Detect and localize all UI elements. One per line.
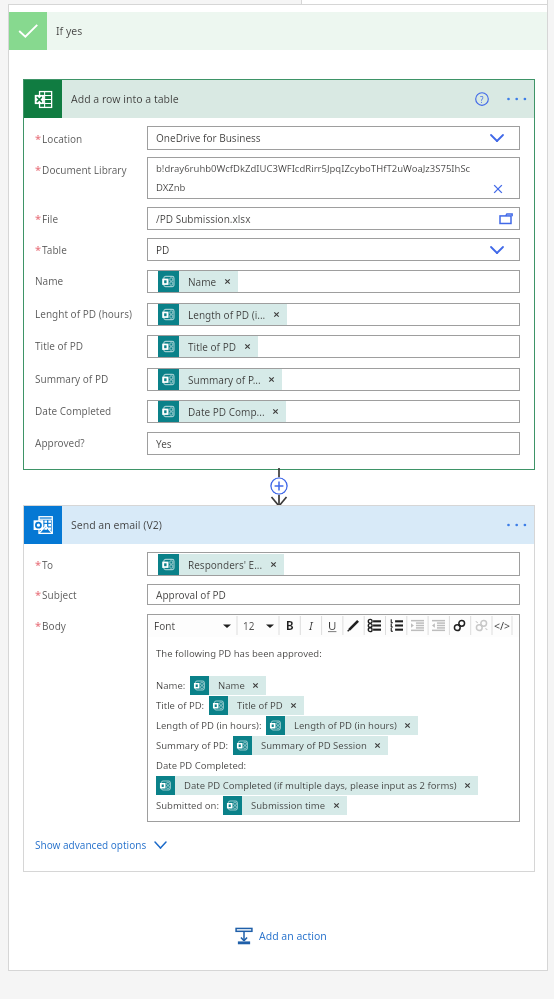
button[interactable]: Length of PD (i... [158, 304, 287, 325]
staticText: If yes [56, 24, 83, 38]
staticText: Length of PD (in hours): [156, 719, 262, 732]
button[interactable]: Code view [492, 614, 513, 637]
button[interactable]: Bold [279, 614, 300, 637]
button[interactable]: Title of PD [147, 335, 520, 358]
staticText: </> [494, 619, 511, 633]
staticText: Send an email (V2) [71, 518, 162, 532]
staticText: Add an action [259, 929, 327, 943]
staticText: * Body [35, 618, 66, 633]
button[interactable]: Decrease indent [428, 614, 449, 637]
button[interactable]: Summary of PD Session [233, 736, 388, 755]
staticText: Lenght of PD (hours) [35, 307, 132, 321]
button[interactable]: /PD Submission.xlsx [147, 207, 520, 230]
button[interactable]: If yes [9, 12, 547, 50]
staticText: Date PD Completed (if multiple days, ple… [184, 779, 457, 792]
staticText: Title of PD [188, 340, 237, 354]
button[interactable]: Italic [300, 614, 321, 637]
button[interactable]: Bulleted list [364, 614, 385, 637]
button[interactable]: Approval of PD [147, 584, 520, 605]
button[interactable]: Date PD Comp... [147, 400, 520, 423]
staticText: Date PD Comp... [188, 405, 265, 419]
button[interactable]: Title of PD [209, 696, 304, 715]
button[interactable]: Responders' E... [147, 552, 520, 576]
button[interactable]: Underline [322, 614, 343, 637]
staticText: Summary of PD [35, 372, 109, 386]
staticText: B [286, 618, 294, 634]
staticText: OneDrive for Business [156, 131, 261, 145]
button[interactable]: Insert a new step [270, 477, 288, 495]
staticText: DXZnb [156, 181, 186, 194]
button[interactable]: Name [158, 271, 238, 292]
button[interactable]: 12 [237, 614, 279, 637]
staticText: Name [188, 275, 217, 289]
staticText: Title of PD [35, 339, 84, 353]
button[interactable]: Numbered list [386, 614, 407, 637]
button[interactable]: OneDrive for Business [147, 126, 520, 150]
staticText: Yes [156, 437, 172, 451]
staticText: Submission time [251, 799, 326, 812]
button[interactable]: Increase indent [407, 614, 428, 637]
button[interactable]: Send an email (V2) [24, 506, 534, 544]
staticText: Add a row into a table [71, 92, 179, 106]
button[interactable]: Remove link [471, 614, 492, 637]
staticText: The following PD has been approved: [156, 647, 322, 660]
button[interactable]: Date PD Comp... [158, 401, 286, 422]
staticText: Name [35, 274, 64, 288]
button[interactable]: Length of PD (i... [147, 303, 520, 326]
staticText: PD [156, 243, 170, 257]
button[interactable]: Show advanced options [35, 836, 167, 854]
button[interactable]: Yes [147, 432, 520, 455]
button[interactable]: More commands [503, 512, 529, 538]
button[interactable]: Summary of P... [147, 368, 520, 391]
staticText: Approval of PD [156, 588, 226, 602]
button[interactable]: Add an action [235, 923, 327, 949]
staticText: Length of PD (i... [188, 308, 266, 322]
staticText: I [309, 618, 313, 634]
button[interactable]: Add a row into a table [24, 80, 534, 118]
button[interactable]: Font [147, 614, 237, 637]
staticText: Summary of P... [188, 373, 261, 387]
button[interactable]: Summary of P... [158, 369, 282, 390]
staticText: /PD Submission.xlsx [156, 212, 251, 226]
staticText: Font [154, 619, 176, 633]
staticText: Name: [156, 679, 186, 692]
button[interactable]: Insert link [449, 614, 470, 637]
button[interactable]: Font colour [343, 614, 364, 637]
staticText: * Subject [35, 587, 77, 602]
staticText: * Document Library [35, 162, 127, 177]
staticText: Summary of PD Session [261, 739, 367, 752]
staticText: Title of PD [237, 699, 283, 712]
staticText: Approved? [35, 436, 85, 450]
staticText: 12 [243, 619, 255, 633]
staticText: Responders' E... [188, 558, 263, 572]
staticText: U [328, 618, 337, 634]
staticText: Name [218, 679, 245, 692]
button[interactable]: Name [190, 676, 266, 695]
button[interactable]: Help [469, 86, 495, 112]
button[interactable]: Length of PD (in hours) [266, 716, 418, 735]
staticText: * To [35, 557, 54, 572]
button[interactable]: Date PD Completed (if multiple days, ple… [156, 776, 478, 795]
button[interactable]: Title of PD [158, 336, 258, 357]
staticText: Date PD Completed: [156, 759, 247, 772]
staticText: * Table [35, 242, 67, 257]
staticText: Summary of PD: [156, 739, 229, 752]
staticText: * File [35, 211, 59, 226]
button[interactable]: Responders' E... [158, 554, 284, 575]
staticText: Title of PD: [156, 699, 205, 712]
staticText: Submitted on: [156, 799, 219, 812]
staticText: * Location [35, 131, 83, 146]
button[interactable]: More commands [503, 86, 529, 112]
button[interactable]: b!dray6ruhb0WcfDkZdIUC3WFIcdRirr5JpqIZcy… [147, 157, 520, 199]
button[interactable]: Submission time [223, 796, 347, 815]
staticText: ? [480, 94, 484, 105]
staticText: Date Completed [35, 404, 112, 418]
staticText: Length of PD (in hours) [294, 719, 397, 732]
staticText: Show advanced options [35, 838, 147, 852]
button[interactable]: PD [147, 238, 520, 261]
button[interactable]: Name [147, 270, 520, 293]
staticText: b!dray6ruhb0WcfDkZdIUC3WFIcdRirr5JpqIZcy… [156, 162, 471, 175]
